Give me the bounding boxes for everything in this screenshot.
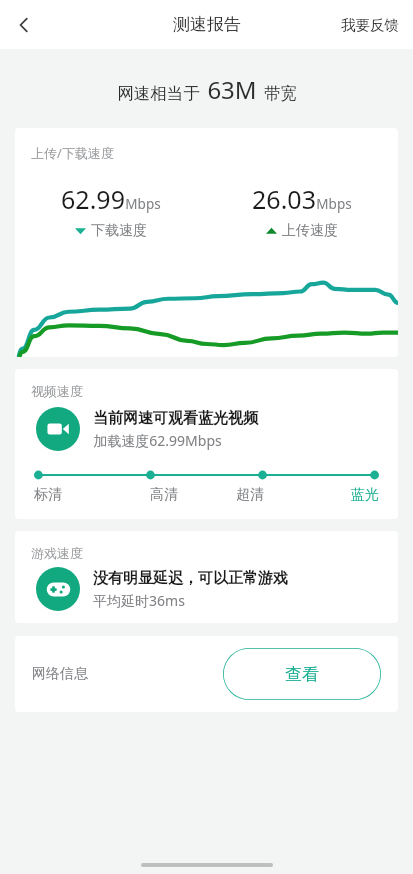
staticText: 蓝光 — [351, 486, 379, 504]
button[interactable]: 查看 — [223, 648, 381, 700]
staticText: 网速相当于 — [117, 83, 200, 104]
staticText: 视频速度 — [31, 383, 83, 399]
staticText: 上传/下载速度 — [31, 144, 114, 162]
staticText: 网络信息 — [32, 665, 88, 683]
staticText: 查看 — [285, 664, 319, 685]
staticText: 游戏速度 — [31, 545, 83, 561]
button[interactable]: 游戏速度 — [15, 531, 398, 623]
staticText: 下载速度 — [91, 222, 147, 240]
staticText: 没有明显延迟，可以正常游戏 — [93, 569, 288, 588]
staticText: 平均延时36ms — [93, 591, 185, 610]
staticText: Mbps — [316, 195, 352, 213]
staticText: 高清 — [150, 486, 178, 504]
button[interactable]: Back — [0, 1, 48, 49]
staticText: 当前网速可观看蓝光视频 — [93, 409, 258, 428]
staticText: 测速报告 — [173, 14, 241, 35]
button[interactable]: 我要反馈 — [327, 4, 413, 46]
staticText: 上传速度 — [282, 222, 338, 240]
staticText: 带宽 — [264, 83, 297, 104]
staticText: Mbps — [125, 195, 161, 213]
staticText: 标清 — [34, 486, 62, 504]
staticText: 加载速度62.99Mbps — [93, 431, 222, 450]
button[interactable]: 上传/下载速度 — [15, 128, 398, 357]
staticText: 超清 — [236, 486, 264, 504]
staticText: 62.99 — [61, 182, 125, 216]
staticText: 26.03 — [252, 182, 316, 216]
button[interactable]: 视频速度 — [15, 369, 398, 519]
staticText: 我要反馈 — [341, 16, 399, 34]
staticText: 63M — [207, 73, 257, 106]
